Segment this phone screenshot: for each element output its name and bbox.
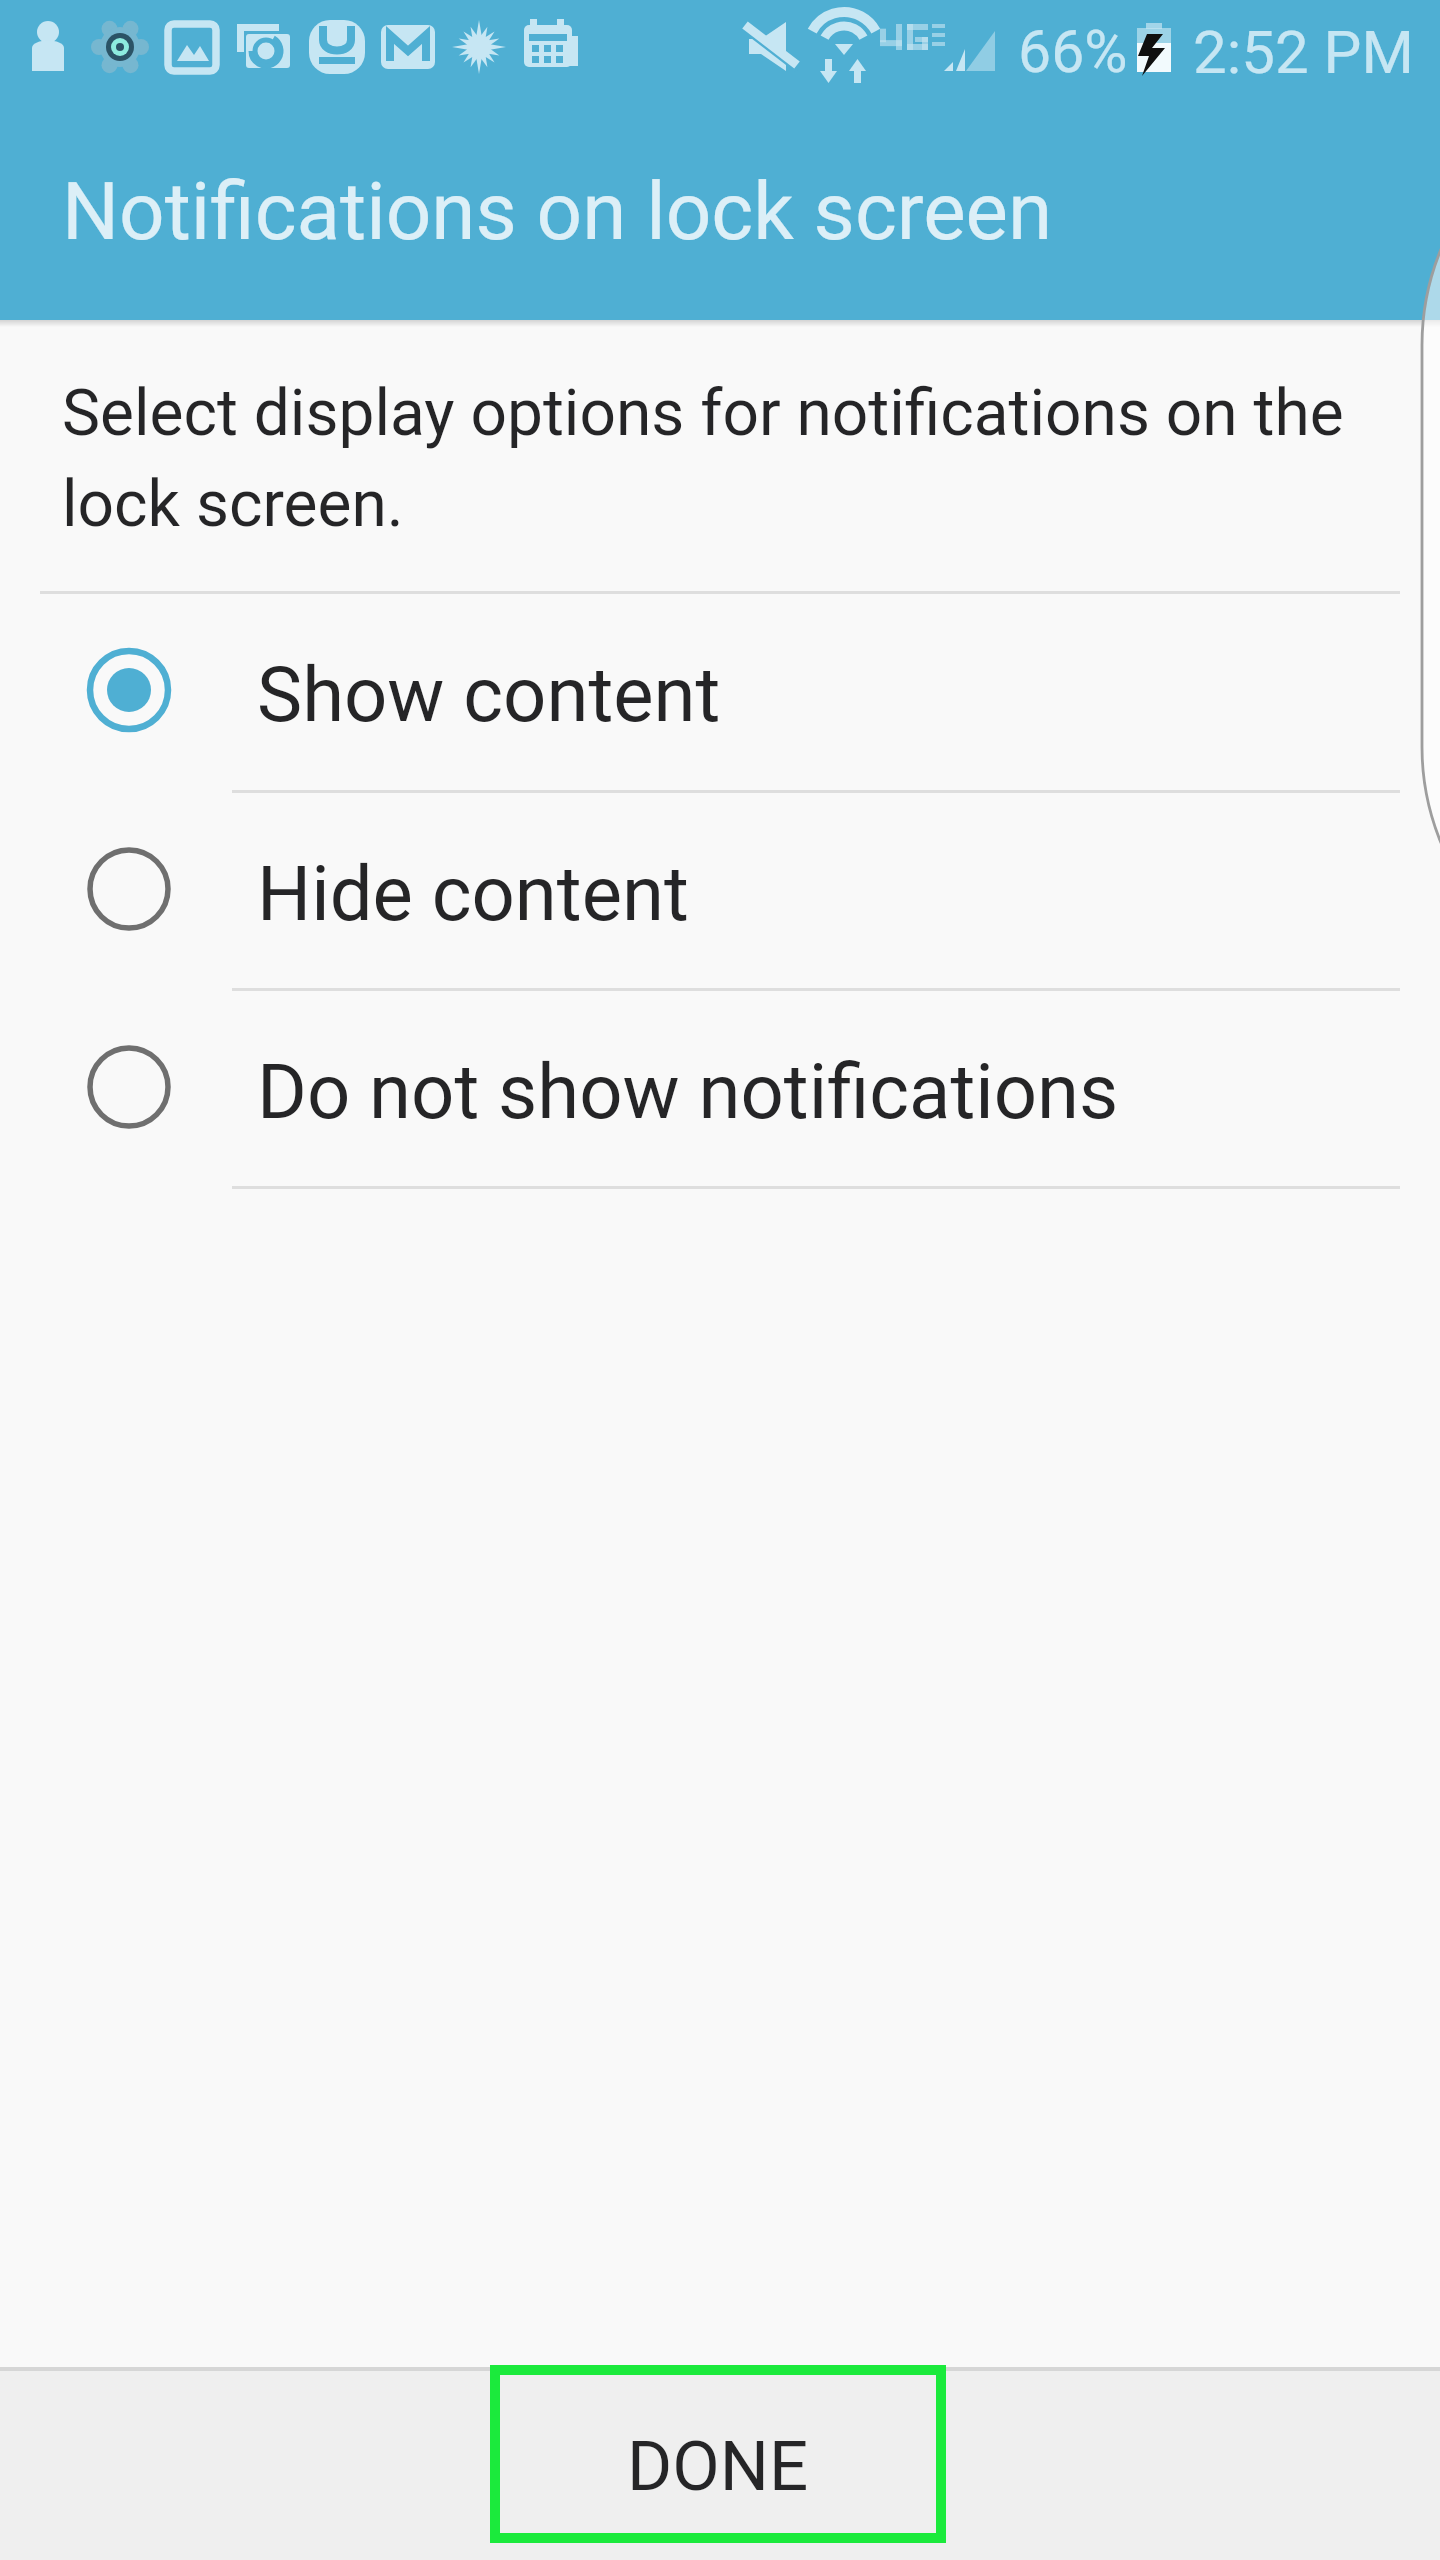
staticText: Select display options for notifications… [62, 376, 1377, 542]
button[interactable]: DONE [490, 2365, 946, 2543]
staticText: Notifications on lock screen [62, 165, 1053, 259]
button[interactable]: Do not show notifications [0, 988, 1440, 1186]
staticText: 2:52 PM [1193, 17, 1414, 87]
button[interactable]: Hide content [0, 790, 1440, 988]
staticText: Do not show notifications [257, 1047, 1119, 1136]
button[interactable]: Show content [0, 591, 1440, 789]
staticText: Show content [257, 650, 721, 739]
staticText: DONE [627, 2426, 809, 2507]
staticText: Hide content [257, 849, 689, 938]
staticText: 66% [1018, 17, 1128, 86]
